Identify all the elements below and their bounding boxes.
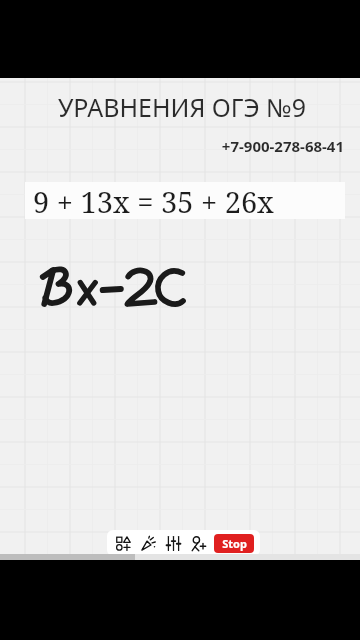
staticText: 9 + 13x = 35 + 26x [33, 182, 274, 219]
staticText: +7-900-278-68-41 [22, 136, 344, 156]
button[interactable]: Shapes [113, 533, 134, 554]
button[interactable]: Effects [138, 533, 159, 554]
button[interactable]: Stop [214, 534, 254, 553]
button[interactable]: Settings [163, 533, 184, 554]
staticText: Stop [222, 536, 247, 551]
staticText: УРАВНЕНИЯ ОГЭ №9 [22, 90, 342, 124]
button[interactable]: Add person [188, 533, 209, 554]
